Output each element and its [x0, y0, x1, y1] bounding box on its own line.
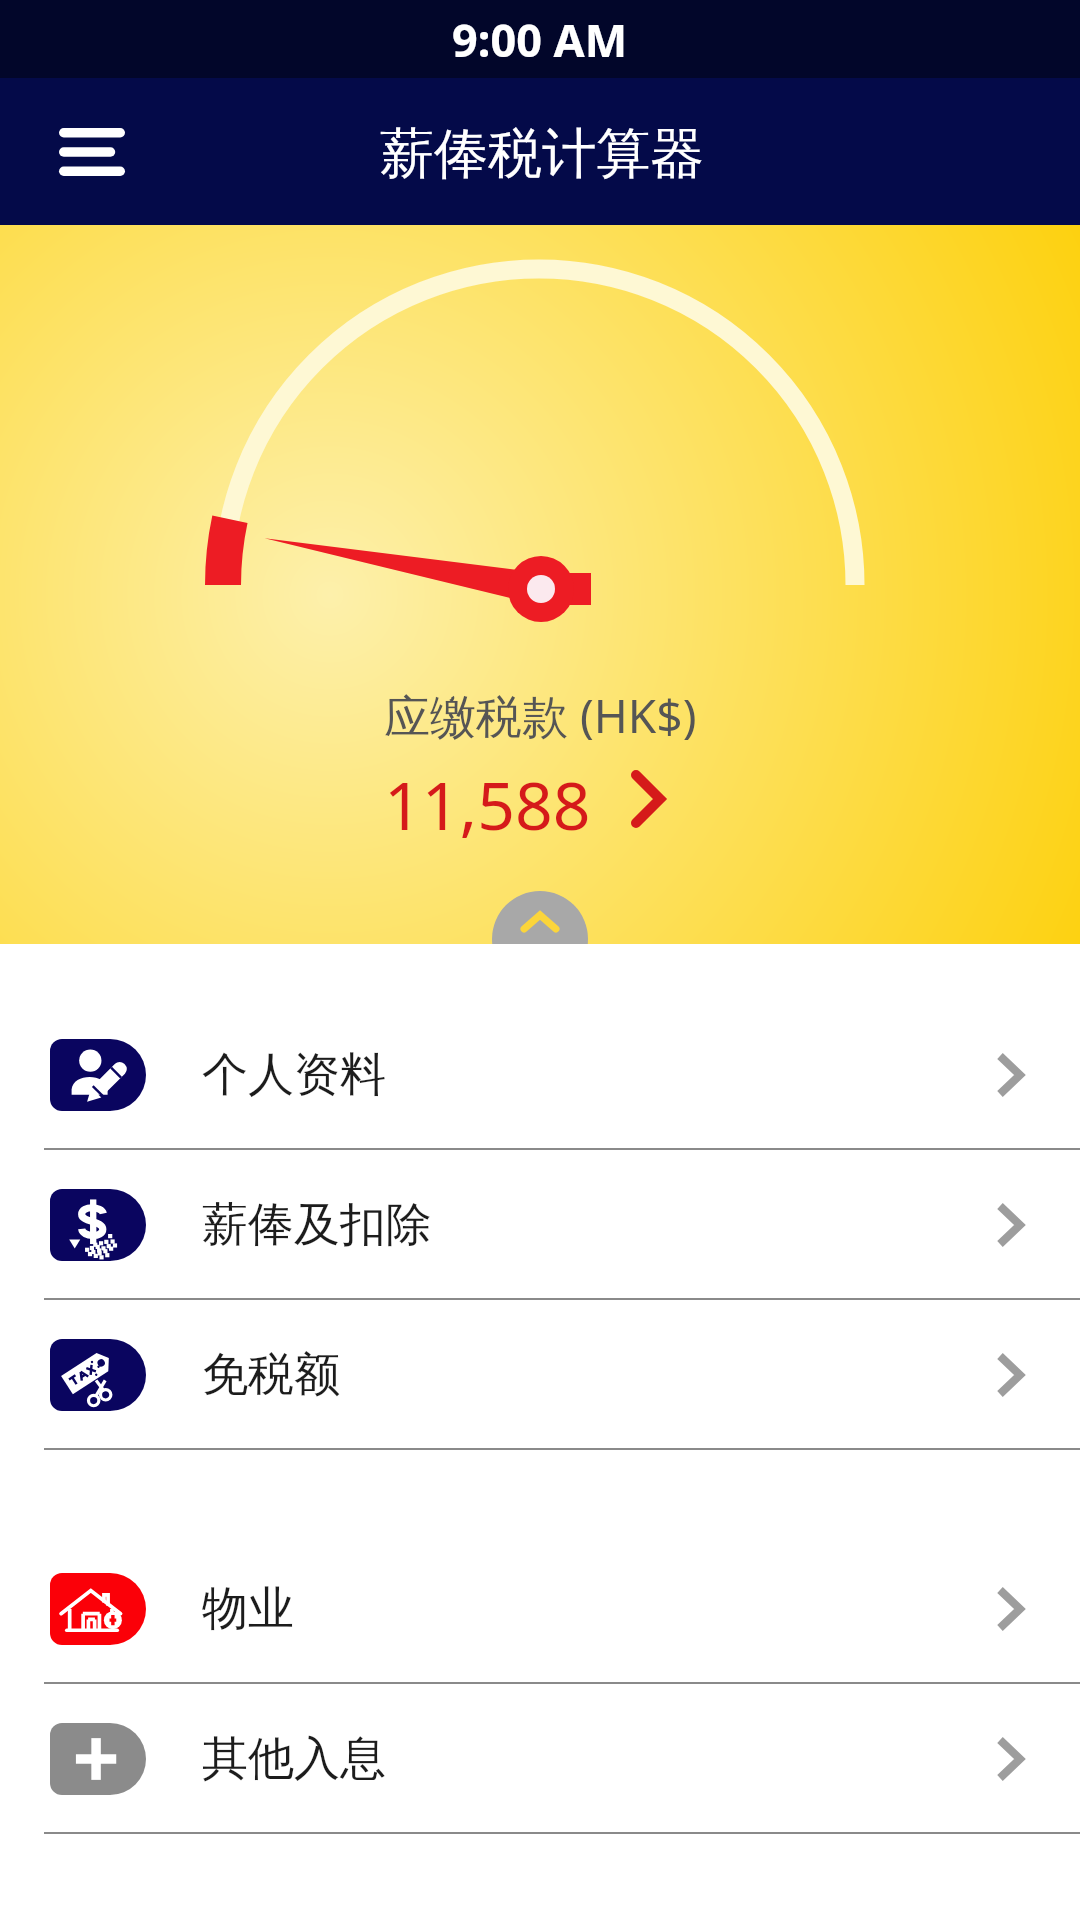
staticText: 11,588	[384, 759, 591, 849]
staticText: 应缴税款 (HK$)	[384, 684, 697, 747]
button[interactable]: 个人资料	[0, 1000, 1080, 1150]
staticText: 物业	[202, 1580, 294, 1638]
button[interactable]: 薪俸及扣除	[0, 1150, 1080, 1300]
staticText: 9:00 AM	[452, 9, 628, 70]
button[interactable]: 免税额	[0, 1300, 1080, 1450]
button[interactable]: Collapse	[492, 891, 588, 987]
staticText: 个人资料	[202, 1046, 386, 1104]
staticText: 免税额	[202, 1346, 340, 1404]
button[interactable]: Menu	[34, 94, 150, 210]
staticText: 薪俸税计算器	[380, 120, 704, 188]
staticText: 薪俸及扣除	[202, 1196, 432, 1254]
button[interactable]: 物业	[0, 1534, 1080, 1684]
button[interactable]: 其他入息	[0, 1684, 1080, 1834]
staticText: 其他入息	[202, 1730, 386, 1788]
